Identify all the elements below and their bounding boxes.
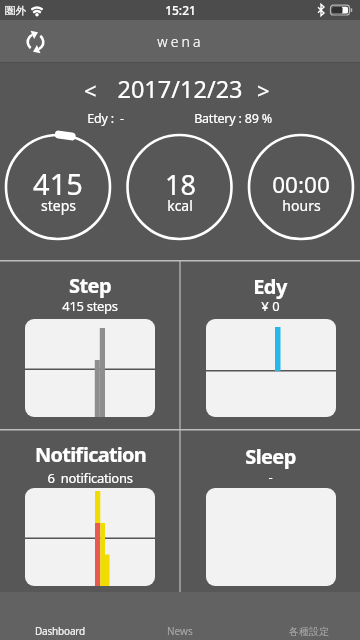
staticText: 415 steps bbox=[62, 297, 118, 315]
button[interactable]: 各種設定 bbox=[269, 619, 349, 640]
button[interactable]: News bbox=[140, 619, 220, 640]
staticText: Edy : - bbox=[87, 110, 124, 127]
staticText: steps bbox=[41, 196, 76, 215]
staticText: 2017/12/23 bbox=[117, 73, 243, 105]
staticText: < bbox=[84, 75, 97, 103]
button[interactable] bbox=[181, 262, 360, 430]
staticText: 6 notifications bbox=[47, 469, 133, 487]
staticText: ¥ 0 bbox=[261, 297, 280, 315]
button[interactable] bbox=[22, 28, 49, 55]
staticText: > bbox=[257, 75, 270, 103]
staticText: Step bbox=[69, 272, 111, 299]
staticText: - bbox=[268, 468, 273, 486]
staticText: Notification bbox=[35, 441, 146, 468]
staticText: Sleep bbox=[245, 443, 296, 470]
staticText: Dashboard bbox=[35, 624, 85, 638]
staticText: 00:00 bbox=[272, 169, 330, 200]
button[interactable]: < bbox=[76, 75, 104, 103]
button[interactable] bbox=[181, 431, 360, 593]
staticText: hours bbox=[282, 196, 321, 215]
button[interactable]: Dashboard bbox=[20, 619, 100, 640]
staticText: 415 bbox=[33, 164, 83, 203]
staticText: kcal bbox=[167, 196, 193, 215]
button[interactable] bbox=[0, 262, 180, 430]
staticText: wena bbox=[157, 32, 204, 51]
staticText: 18 bbox=[165, 166, 196, 203]
staticText: 各種設定 bbox=[289, 625, 329, 638]
staticText: News bbox=[167, 624, 193, 638]
staticText: Edy bbox=[253, 273, 287, 300]
button[interactable]: > bbox=[249, 75, 277, 103]
staticText: Battery : 89 % bbox=[194, 110, 272, 127]
staticText: 15:21 bbox=[165, 2, 196, 18]
button[interactable] bbox=[0, 431, 180, 593]
staticText: 圏外 bbox=[5, 4, 26, 17]
